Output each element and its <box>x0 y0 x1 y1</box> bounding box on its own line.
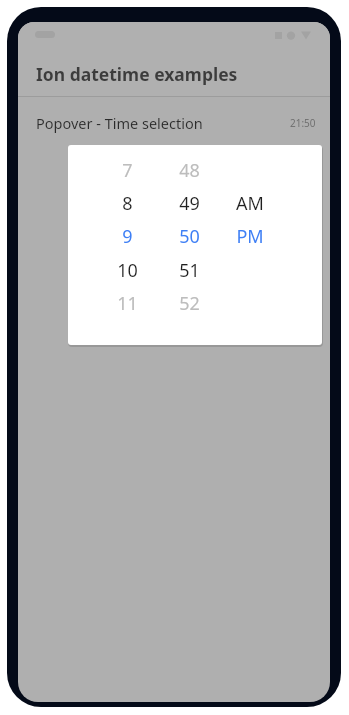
button[interactable]: Minute 52 <box>162 288 216 318</box>
button[interactable]: Minute 49 <box>162 188 216 218</box>
staticText: Popover - Time selection <box>36 113 203 133</box>
button[interactable]: Hour 9 <box>100 221 154 251</box>
button[interactable]: PM <box>223 221 277 251</box>
button[interactable]: AM <box>223 188 277 218</box>
button[interactable]: Hour 8 <box>100 188 154 218</box>
staticText: 52 <box>179 291 200 316</box>
button[interactable]: Ion datetime examples <box>18 52 330 96</box>
button[interactable]: Hour 11 <box>100 288 154 318</box>
button[interactable]: Minute 51 <box>162 255 216 285</box>
button[interactable]: Hour 7 <box>100 155 154 185</box>
staticText: 50 <box>179 224 200 249</box>
staticText: 11 <box>117 291 138 316</box>
staticText: 9 <box>122 224 133 249</box>
staticText: Ion datetime examples <box>36 62 238 86</box>
staticText: 51 <box>179 258 200 283</box>
staticText: 49 <box>179 191 200 216</box>
button[interactable]: Popover - Time selection <box>18 97 330 149</box>
staticText: 7 <box>122 158 133 183</box>
staticText: 21:50 <box>290 116 316 130</box>
button[interactable]: Hour 10 <box>100 255 154 285</box>
staticText: 10 <box>117 258 138 283</box>
staticText: 8 <box>122 191 133 216</box>
staticText: PM <box>236 224 264 249</box>
staticText: AM <box>236 191 264 216</box>
button[interactable]: Minute 50 <box>162 221 216 251</box>
button[interactable]: Minute 48 <box>162 155 216 185</box>
staticText: 48 <box>179 158 200 183</box>
